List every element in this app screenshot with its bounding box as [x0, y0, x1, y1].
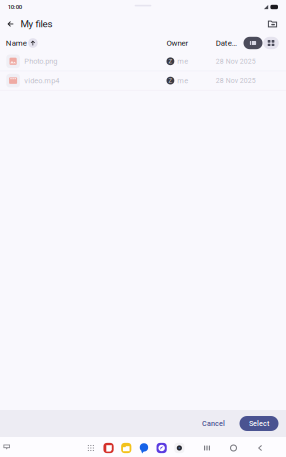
button[interactable]: Cancel — [194, 416, 233, 431]
button[interactable]: Home — [229, 442, 238, 453]
staticText: Name — [6, 38, 27, 48]
staticText: 10:00 — [8, 3, 22, 10]
button[interactable]: Photo.png — [0, 52, 286, 71]
button[interactable]: List view — [243, 37, 262, 49]
button[interactable]: Back — [255, 442, 264, 453]
staticText: Photo.png — [24, 57, 57, 66]
staticText: Cancel — [202, 419, 225, 428]
button[interactable]: Create new folder — [263, 15, 281, 33]
button[interactable]: Messages — [135, 441, 153, 454]
button[interactable]: Owner — [166, 35, 216, 51]
staticText: Z — [168, 58, 172, 65]
staticText: me — [177, 57, 188, 66]
button[interactable]: Browser — [153, 441, 170, 454]
staticText: me — [177, 76, 188, 85]
button[interactable]: Name — [0, 35, 166, 51]
staticText: 28 Nov 2025 — [216, 76, 256, 85]
button[interactable]: My files — [17, 15, 57, 33]
button[interactable]: All apps — [82, 441, 100, 454]
staticText: Date… — [216, 38, 237, 48]
staticText: My files — [21, 18, 53, 30]
button[interactable]: Back — [3, 15, 17, 33]
button[interactable]: Files — [117, 441, 135, 454]
staticText: Z — [168, 77, 172, 84]
button[interactable]: Camera — [170, 441, 188, 454]
button[interactable]: Recent apps — [202, 442, 211, 453]
button[interactable]: Grid view — [263, 37, 279, 49]
button[interactable]: Select — [239, 416, 278, 431]
button[interactable]: Date… — [216, 35, 243, 51]
staticText: 28 Nov 2025 — [216, 57, 256, 65]
staticText: Select — [249, 419, 269, 428]
staticText: Owner — [166, 38, 188, 48]
button[interactable]: Notes — [100, 441, 117, 454]
button[interactable]: video.mp4 — [0, 71, 286, 90]
staticText: video.mp4 — [24, 76, 59, 85]
